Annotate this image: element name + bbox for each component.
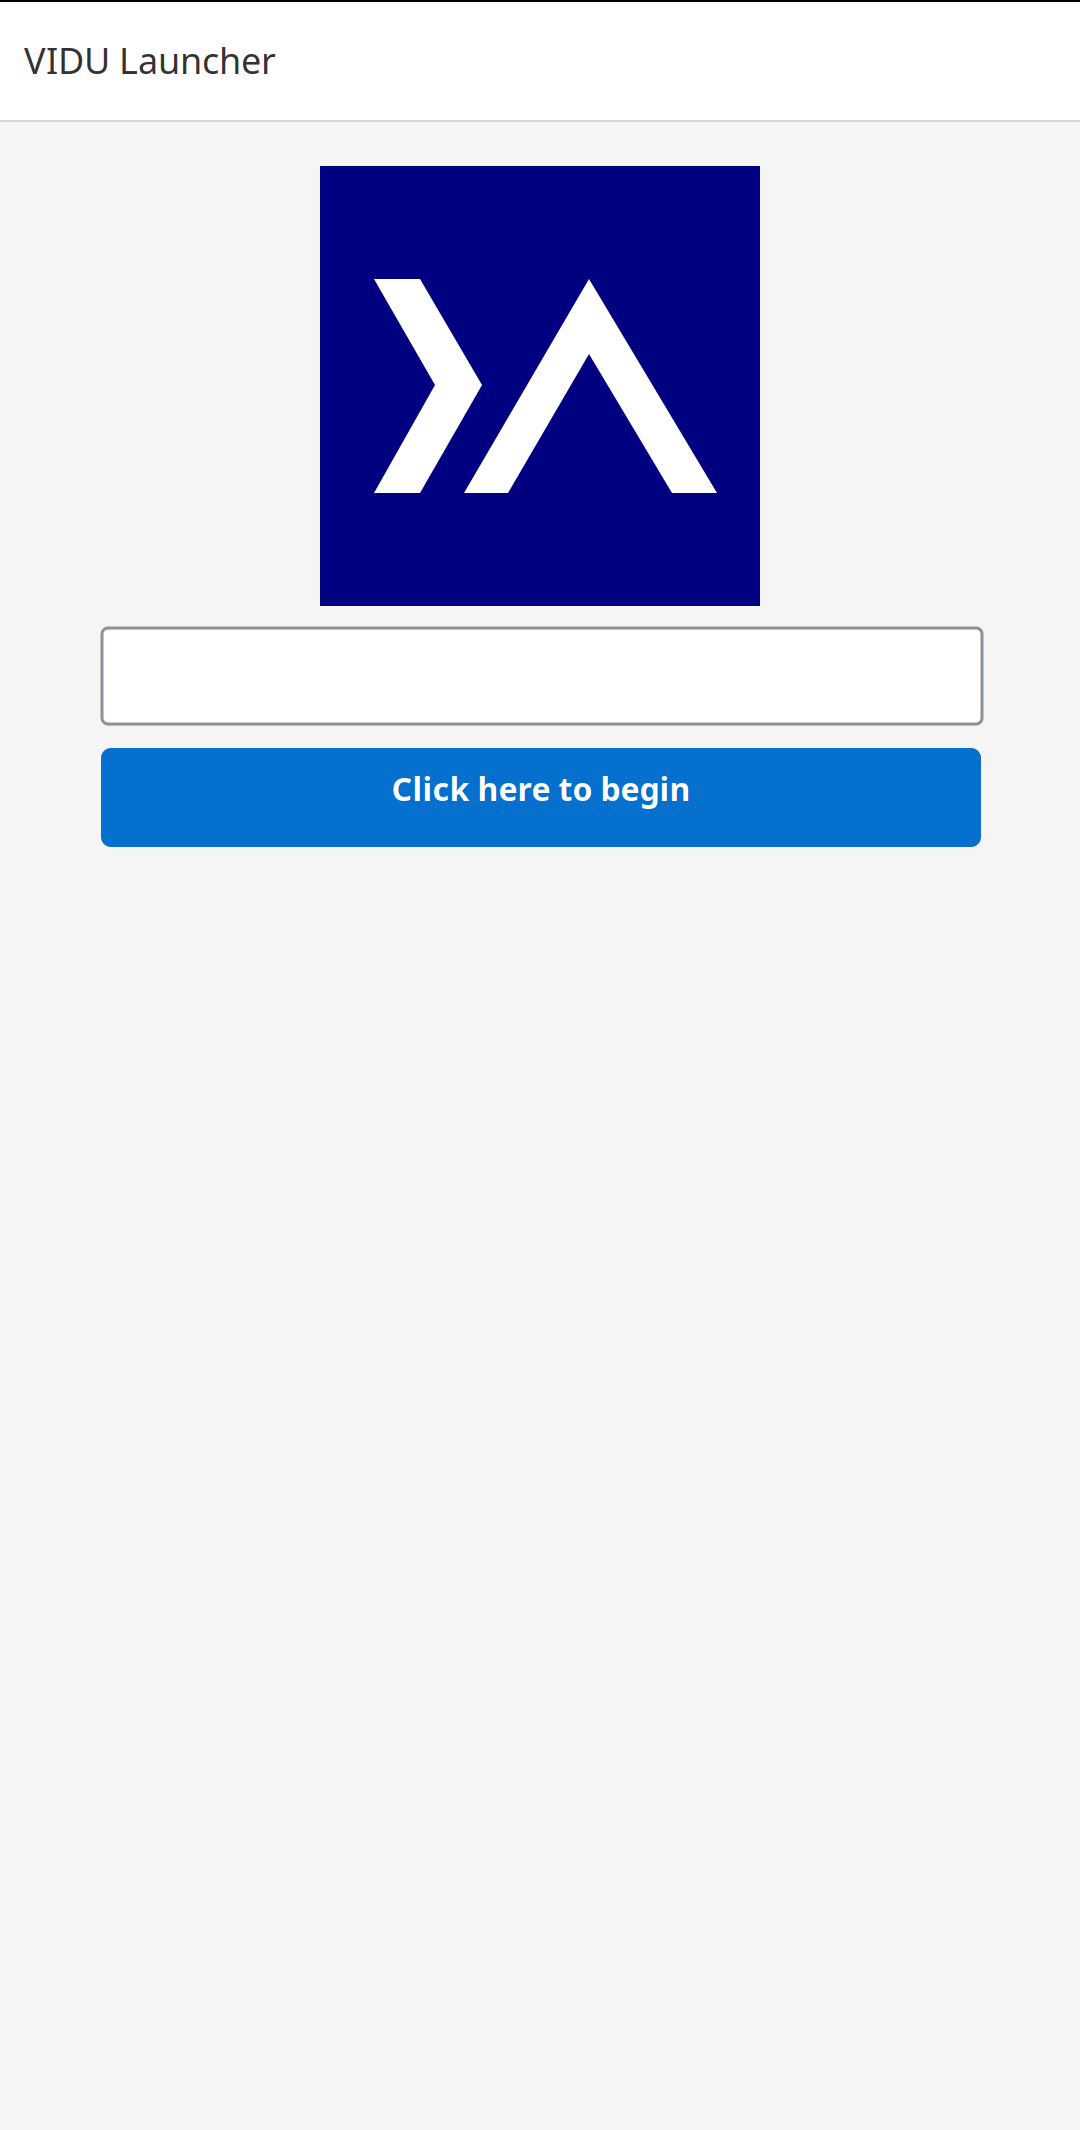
staticText: VIDU Launcher: [24, 36, 276, 84]
button[interactable]: Click here to begin: [101, 748, 981, 847]
staticText: Click here to begin: [391, 767, 690, 810]
button[interactable]: Address field: [102, 628, 982, 724]
